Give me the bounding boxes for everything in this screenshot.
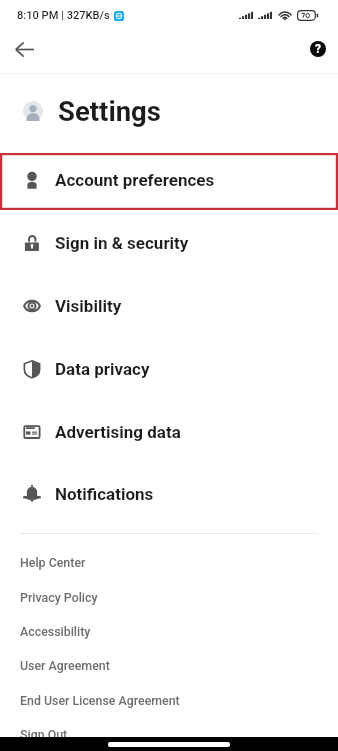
button[interactable]: Help Center <box>0 545 338 579</box>
button[interactable]: Advertising data <box>0 400 338 463</box>
staticText: Notifications <box>55 484 154 504</box>
staticText: Privacy Policy <box>20 590 98 605</box>
staticText: User Agreement <box>20 658 110 673</box>
button[interactable]: Accessibility <box>0 614 338 648</box>
staticText: 8:10 PM | 327KB/s <box>17 9 110 22</box>
button[interactable]: Sign Out <box>0 717 338 751</box>
button[interactable]: End User License Agreement <box>0 683 338 717</box>
staticText: Visibility <box>55 296 122 316</box>
button[interactable]: Sign in & security <box>0 211 338 274</box>
staticText: ? <box>315 42 321 56</box>
button[interactable]: Privacy Policy <box>0 580 338 614</box>
button[interactable]: Visibility <box>0 274 338 337</box>
button[interactable]: Notifications <box>0 462 338 525</box>
button[interactable]: Account preferences <box>0 148 338 211</box>
button[interactable]: User Agreement <box>0 648 338 682</box>
staticText: End User License Agreement <box>20 693 180 708</box>
staticText: Account preferences <box>55 170 215 190</box>
staticText: Accessibility <box>20 624 91 639</box>
button[interactable]: Data privacy <box>0 337 338 400</box>
button[interactable]: Back <box>7 32 41 66</box>
staticText: Help Center <box>20 555 86 570</box>
button[interactable]: Help <box>303 34 333 64</box>
staticText: Settings <box>58 95 161 127</box>
staticText: Sign Out <box>20 727 68 742</box>
staticText: Data privacy <box>55 359 150 379</box>
staticText: Advertising data <box>55 422 181 442</box>
staticText: Sign in & security <box>55 233 189 253</box>
